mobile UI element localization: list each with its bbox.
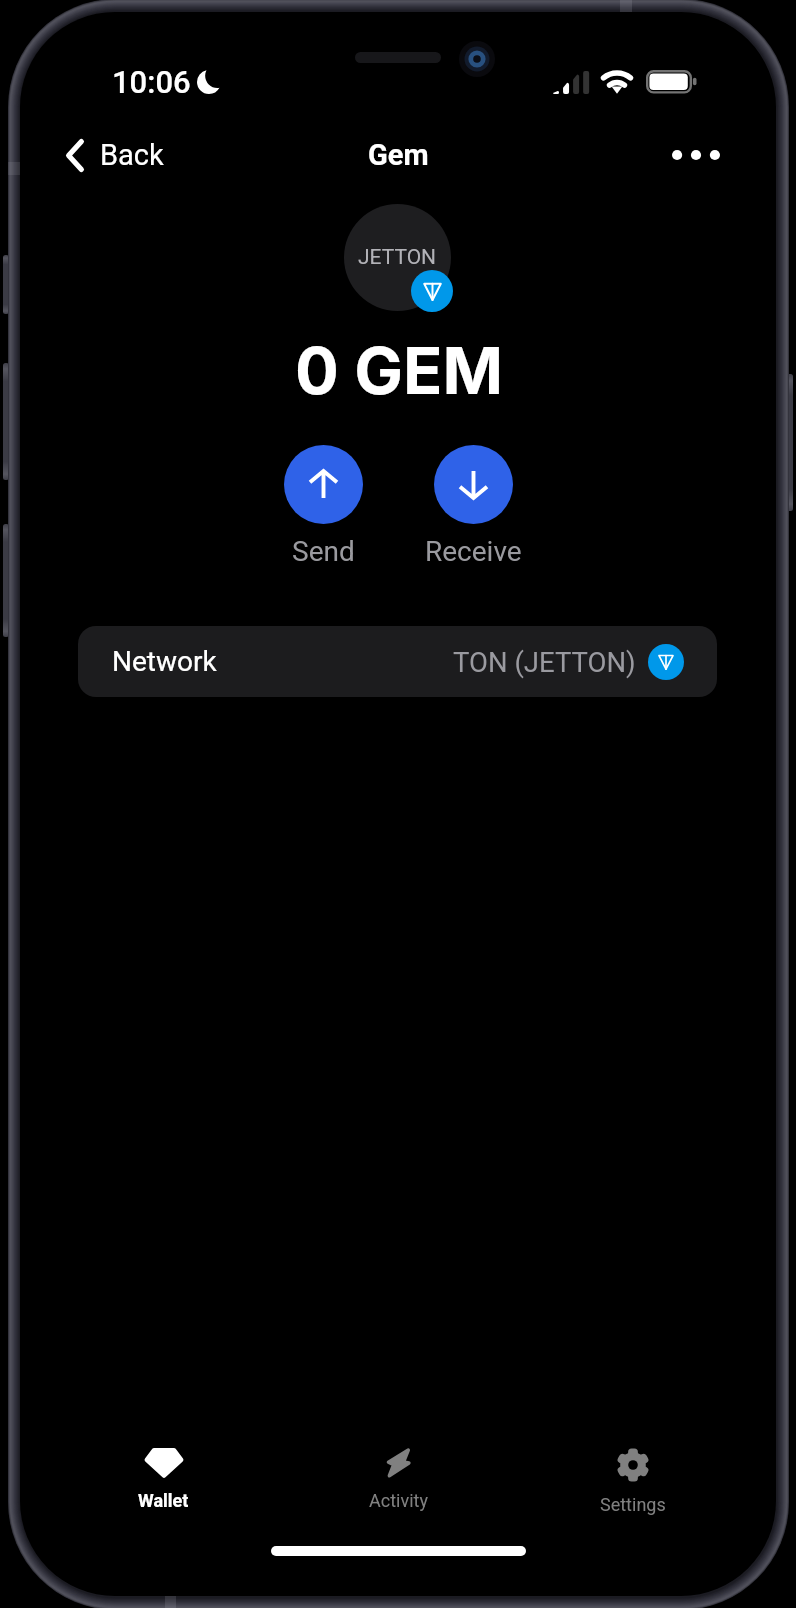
staticText: Settings	[600, 1494, 666, 1515]
button[interactable]: Activity	[320, 1434, 476, 1520]
button[interactable]: Back	[66, 133, 164, 177]
staticText: TON (JETTON)	[453, 646, 636, 678]
button[interactable]: Settings	[555, 1434, 711, 1520]
staticText: JETTON	[358, 245, 437, 270]
button[interactable]: Send	[248, 445, 398, 570]
staticText: Back	[100, 138, 164, 172]
staticText: 0 GEM	[295, 331, 504, 410]
button[interactable]: More options	[668, 134, 724, 176]
staticText: Network	[112, 645, 217, 678]
button[interactable]: Receive	[398, 445, 548, 570]
staticText: Gem	[368, 138, 429, 172]
staticText: 10:06	[112, 64, 191, 100]
staticText: Receive	[425, 535, 522, 568]
staticText: Wallet	[138, 1490, 189, 1511]
button[interactable]: Network	[78, 626, 717, 697]
staticText: Activity	[369, 1490, 428, 1511]
button[interactable]: Wallet	[85, 1434, 241, 1520]
staticText: Send	[292, 535, 355, 568]
